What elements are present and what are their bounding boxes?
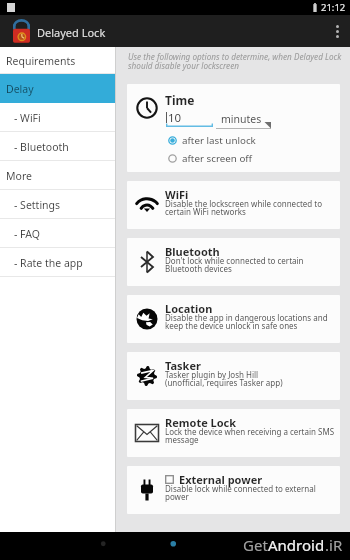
- staticText: Time: [165, 92, 195, 108]
- button[interactable]: Bluetooth: [127, 238, 340, 286]
- staticText: Lock the device when receiving a certain…: [165, 426, 335, 445]
- staticText: - FAQ: [14, 227, 41, 241]
- staticText: Remote Lock: [165, 415, 237, 430]
- staticText: Delay: [6, 82, 34, 96]
- staticText: after screen off: [182, 152, 253, 165]
- staticText: - WiFi: [14, 111, 41, 125]
- staticText: .iR: [325, 535, 343, 555]
- staticText: Don't lock while connected to certain Bl…: [165, 255, 304, 274]
- button[interactable]: WiFi: [127, 181, 340, 229]
- button[interactable]: after last unlock: [167, 134, 256, 147]
- staticText: More: [6, 169, 32, 183]
- staticText: minutes: [221, 112, 262, 126]
- staticText: 10: [168, 110, 182, 126]
- staticText: Use the following options to determine, …: [128, 51, 344, 72]
- staticText: Location: [165, 301, 213, 316]
- button[interactable]: - WiFi: [0, 103, 115, 132]
- staticText: Delayed Lock: [37, 25, 106, 40]
- staticText: Disable the lockscreen while connected t…: [165, 198, 323, 217]
- button[interactable]: - FAQ: [0, 219, 115, 248]
- button[interactable]: - Rate the app: [0, 248, 115, 277]
- staticText: Tasker: [165, 358, 201, 373]
- staticText: Tasker plugin by Josh Hill (unofficial, …: [165, 369, 283, 388]
- button[interactable]: Remote Lock: [127, 409, 340, 457]
- staticText: - Rate the app: [14, 256, 83, 270]
- staticText: WiFi: [165, 187, 189, 202]
- staticText: Disable the app in dangerous locations a…: [165, 312, 328, 331]
- button[interactable]: - Settings: [0, 190, 115, 219]
- button[interactable]: Tasker: [127, 352, 340, 400]
- button[interactable]: - Bluetooth: [0, 132, 115, 161]
- button[interactable]: More: [0, 161, 115, 190]
- staticText: - Bluetooth: [14, 140, 69, 154]
- staticText: Disable lock while connected to external…: [165, 483, 316, 502]
- button[interactable]: Time: [127, 84, 340, 172]
- staticText: Get: [243, 535, 268, 555]
- staticText: External power: [179, 472, 263, 487]
- staticText: Android: [268, 535, 325, 555]
- button[interactable]: More options: [324, 15, 350, 47]
- button[interactable]: after screen off: [167, 152, 253, 165]
- button[interactable]: Location: [127, 295, 340, 343]
- button[interactable]: External power: [127, 466, 340, 514]
- staticText: Requirements: [6, 54, 76, 68]
- button[interactable]: Delay: [0, 74, 115, 103]
- staticText: - Settings: [14, 198, 61, 212]
- staticText: after last unlock: [182, 134, 256, 147]
- staticText: Bluetooth: [165, 244, 220, 259]
- staticText: 21:12: [321, 1, 346, 14]
- button[interactable]: Requirements: [0, 47, 115, 74]
